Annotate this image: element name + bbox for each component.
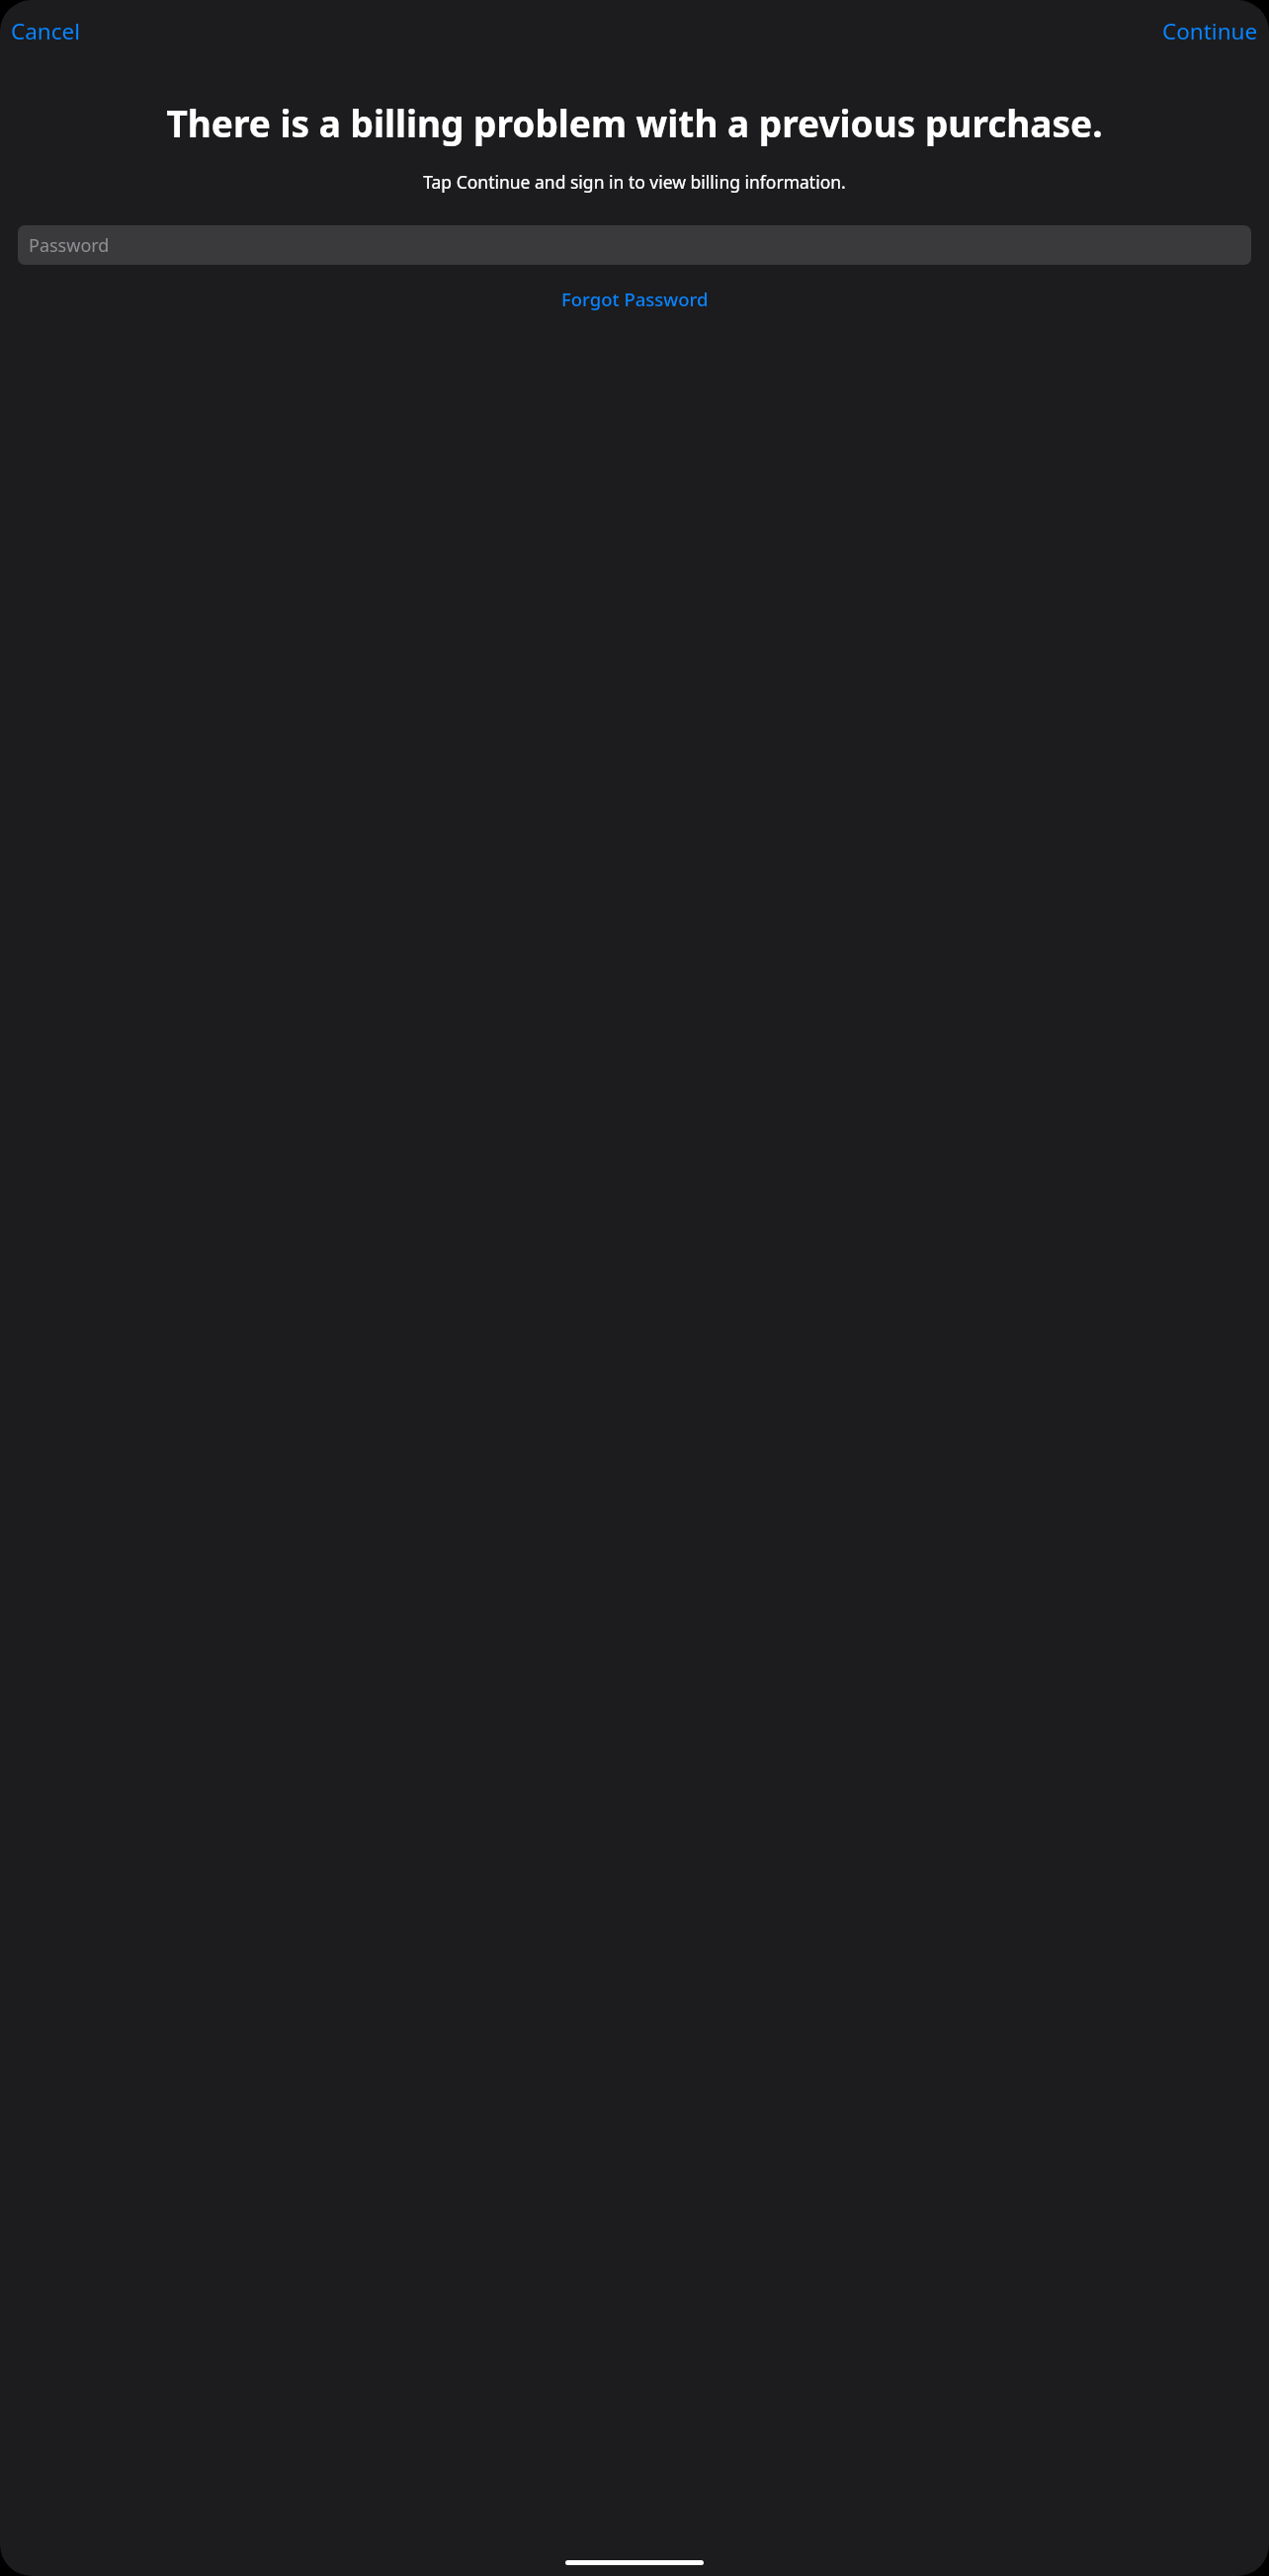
- button[interactable]: Cancel: [0, 12, 92, 50]
- staticText: Cancel: [11, 16, 81, 46]
- staticText: There is a billing problem with a previo…: [11, 98, 1258, 147]
- button[interactable]: Password: [18, 225, 1251, 265]
- staticText: Password: [29, 233, 110, 258]
- staticText: Forgot Password: [561, 287, 709, 311]
- staticText: Tap Continue and sign in to view billing…: [14, 170, 1255, 194]
- button[interactable]: Forgot Password: [550, 282, 720, 316]
- button[interactable]: Continue: [1151, 12, 1269, 50]
- staticText: Continue: [1162, 16, 1258, 46]
